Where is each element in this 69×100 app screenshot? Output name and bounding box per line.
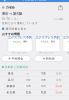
staticText: 定刻 [56,72,62,75]
staticText: 品川 [8,78,14,81]
staticText: 2分延 [55,84,62,88]
button[interactable]: エクスプレス予約 [63,37,69,52]
button[interactable]: 予約照会 [1,56,30,61]
button[interactable]: Back [0,0,9,2]
staticText: 詳しくはこちら › [39,51,55,54]
staticText: エクスプレス予約 [35,36,59,39]
button[interactable]: Share [57,4,64,10]
staticText: 10:36 [25,91,30,94]
staticText: 9:19 [41,84,45,88]
staticText: 予約照会 [11,57,23,60]
button[interactable]: 時刻表 [34,56,63,61]
staticText: 新横浜 [6,84,15,88]
staticText: かんたん・便利 [13,40,27,43]
staticText: 時刻表 [46,57,55,60]
staticText: かんたん・便利 [40,40,54,43]
staticText: 9:00 [41,72,45,75]
staticText: エクスプレス予約 [8,36,32,39]
staticText: — [26,72,29,75]
staticText: 名古屋 [6,91,15,94]
staticText: 停車駅と到着時刻 [5,65,29,69]
staticText: 定刻どおり運転しています [2,21,38,25]
staticText: 9:18 [26,84,30,88]
staticText: 9:08 [41,78,45,82]
staticText: 6月10日（月） [2,17,20,21]
staticText: のぞみ [6,5,15,10]
staticText: 運行情報を見る [5,27,26,30]
staticText: 2分延 [55,91,62,94]
staticText: 東京 [8,72,14,75]
staticText: 東京 → 新大阪 [2,11,22,16]
staticText: 詳しくはこちら › [67,51,69,54]
staticText: 10:38 [40,91,45,94]
staticText: エクスプレス予約 [63,36,69,39]
staticText: かんたん・便利 [68,40,69,43]
staticText: 詳しくはこちら › [12,51,28,54]
staticText: 9:07 [26,78,30,82]
button[interactable]: エクスプレス予約 [8,37,32,52]
staticText: 定刻 [56,78,62,81]
staticText: 列車走行位置 [22,0,46,2]
button[interactable]: エクスプレス予約 [35,37,59,52]
staticText: 9:20 現在 [54,17,63,20]
staticText: おすすめ情報 [2,32,20,36]
